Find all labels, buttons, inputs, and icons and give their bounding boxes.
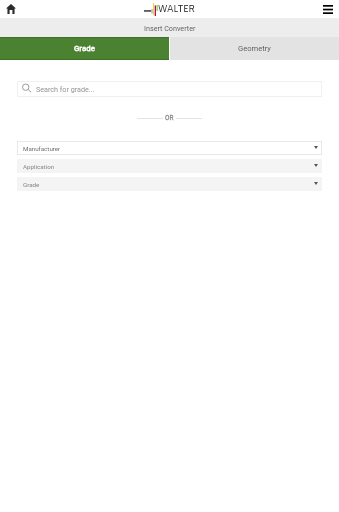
button[interactable]: Grade <box>17 177 322 191</box>
staticText: OR <box>165 114 174 122</box>
staticText: Manufacturer <box>23 145 61 152</box>
button[interactable]: Home <box>3 1 19 17</box>
staticText: WALTER <box>158 2 195 16</box>
staticText: Insert Converter <box>144 24 196 32</box>
button[interactable]: Menu <box>320 1 336 17</box>
staticText: Grade <box>74 44 95 53</box>
staticText: Search for grade... <box>36 85 95 93</box>
button[interactable]: Search for grade... <box>17 81 322 97</box>
button[interactable]: Manufacturer <box>17 141 322 155</box>
staticText: Grade <box>23 181 40 188</box>
button[interactable]: Grade <box>0 38 169 59</box>
staticText: Application <box>23 163 55 170</box>
button[interactable]: Application <box>17 159 322 173</box>
button[interactable]: Geometry <box>170 37 339 60</box>
staticText: Geometry <box>238 44 271 53</box>
